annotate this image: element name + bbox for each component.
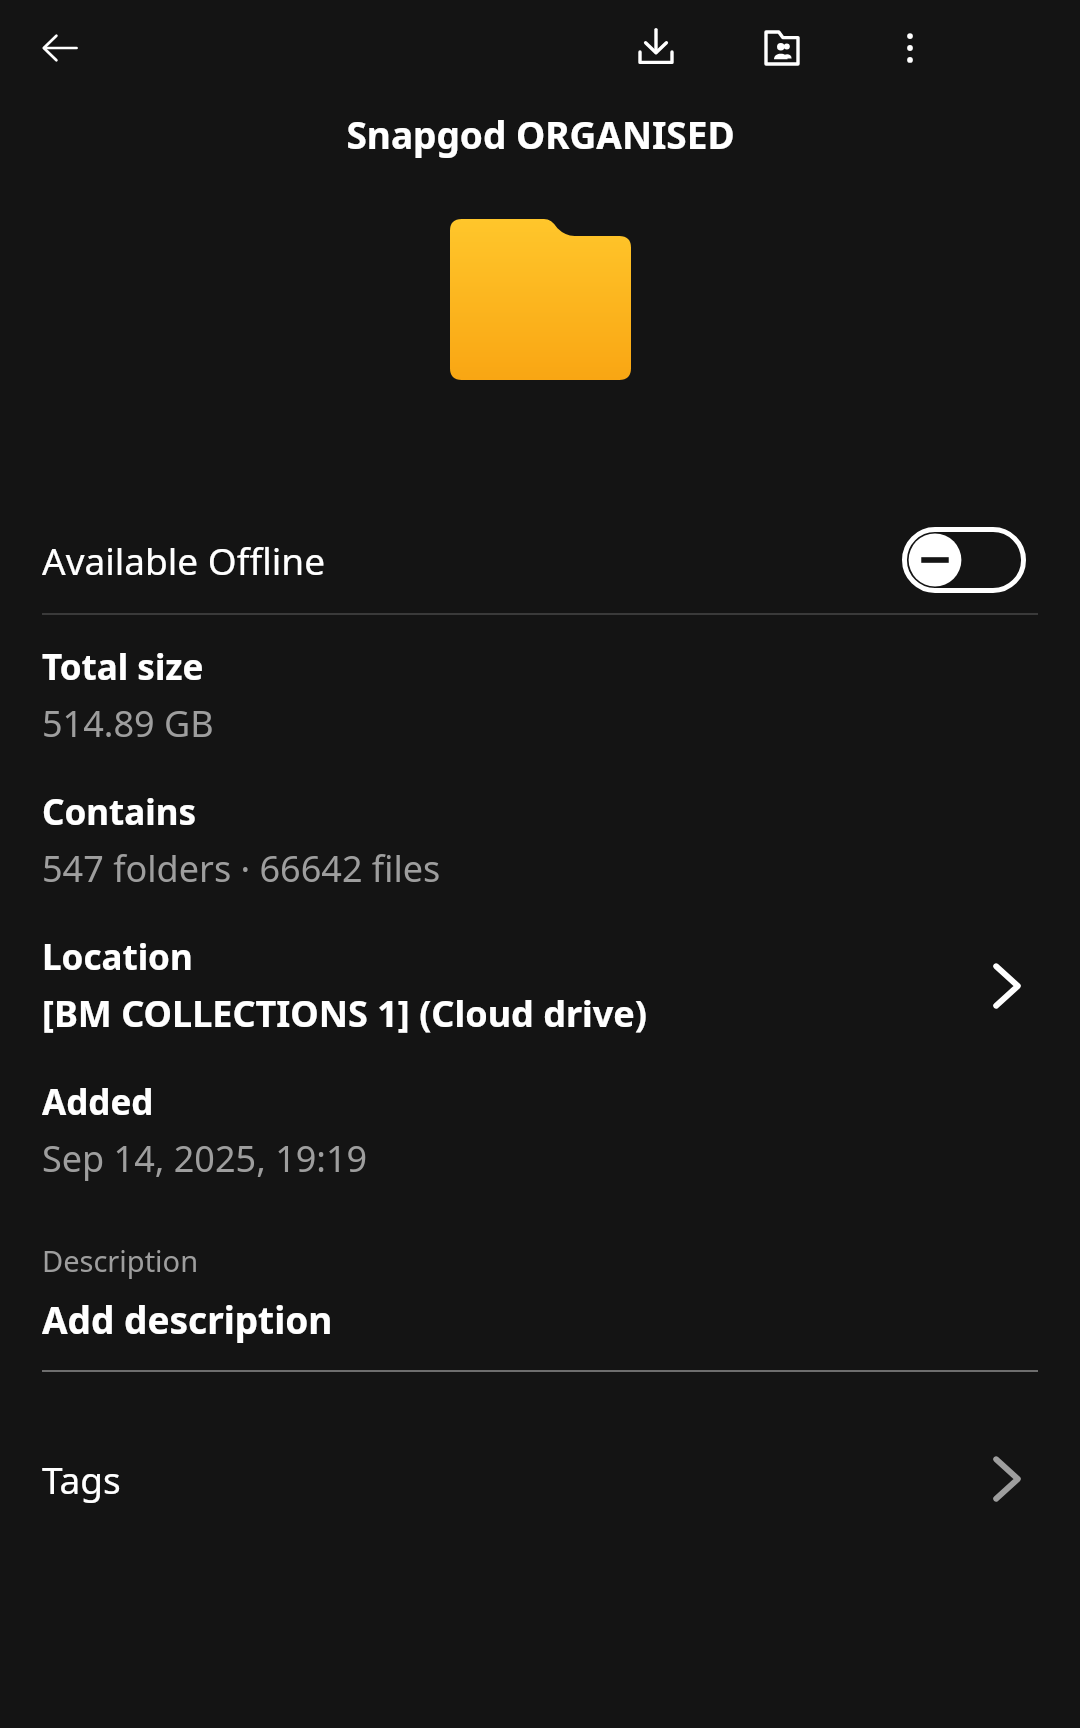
button[interactable]: Location (0, 933, 1080, 1038)
staticText: Description (42, 1241, 199, 1280)
staticText: 547 folders · 66642 files (42, 844, 441, 893)
button[interactable]: Description (0, 1241, 1080, 1372)
staticText: Total size (42, 643, 204, 691)
button[interactable]: Download (622, 14, 690, 82)
button[interactable]: Added (0, 1078, 1080, 1183)
staticText: Add description (42, 1294, 333, 1344)
button[interactable]: Total size (0, 643, 1080, 748)
button[interactable]: Available Offline (0, 515, 1080, 605)
button[interactable]: Contains (0, 788, 1080, 893)
staticText: Location (42, 933, 193, 981)
staticText: Tags (42, 1454, 121, 1504)
staticText: Available Offline (42, 535, 326, 585)
button[interactable]: Shared folder (748, 14, 816, 82)
staticText: Contains (42, 788, 197, 836)
staticText: Snapgod ORGANISED (346, 109, 735, 159)
button[interactable]: Tags (0, 1434, 1080, 1524)
button[interactable]: More options (876, 14, 944, 82)
button[interactable]: Back (28, 16, 92, 80)
staticText: Sep 14, 2025, 19:19 (42, 1134, 368, 1183)
staticText: [BM COLLECTIONS 1] (Cloud drive) (42, 989, 648, 1038)
staticText: Added (42, 1078, 154, 1126)
staticText: 514.89 GB (42, 699, 214, 748)
